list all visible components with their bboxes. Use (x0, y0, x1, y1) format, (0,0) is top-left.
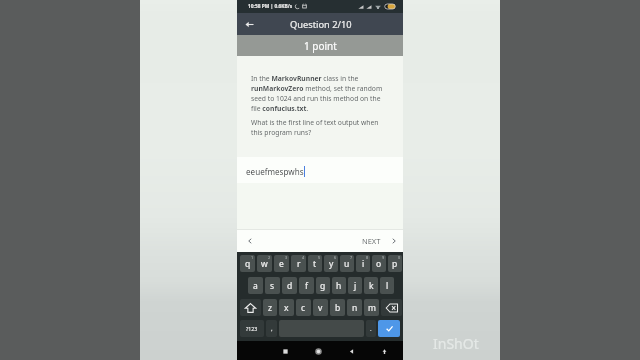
button[interactable]: , (266, 320, 277, 337)
staticText: 1 (251, 255, 254, 260)
staticText: ?123 (246, 325, 258, 332)
staticText: y (329, 258, 334, 270)
button[interactable]: f (299, 277, 314, 294)
staticText: 4 (302, 255, 305, 260)
button[interactable]: o (372, 255, 386, 272)
button[interactable]: m (364, 299, 379, 316)
button[interactable]: w (257, 255, 272, 272)
button[interactable]: Back (239, 13, 259, 35)
button[interactable]: Previous question (241, 230, 259, 252)
button[interactable]: Home (311, 344, 325, 358)
button[interactable]: eeuefmespwhs (237, 157, 403, 183)
button[interactable]: u (340, 255, 354, 272)
staticText: Question 2/10 (290, 18, 352, 31)
button[interactable]: Hide keyboard (377, 344, 391, 358)
button[interactable]: ?123 (240, 320, 264, 337)
button[interactable]: l (380, 277, 394, 294)
staticText: 5 (318, 255, 321, 260)
staticText: 0 (398, 255, 401, 260)
button[interactable]: y (324, 255, 338, 272)
button[interactable]: p (388, 255, 402, 272)
staticText: d (287, 280, 293, 292)
button[interactable]: z (263, 299, 277, 316)
button[interactable]: a (248, 277, 263, 294)
button[interactable]: g (316, 277, 330, 294)
button[interactable]: b (330, 299, 345, 316)
staticText: p (392, 258, 398, 270)
staticText: f (305, 280, 308, 292)
staticText: NEXT (362, 236, 381, 246)
staticText: What is the first line of text output wh… (251, 118, 387, 137)
staticText: v (318, 302, 323, 314)
button[interactable]: r (291, 255, 306, 272)
staticText: InShOt (433, 334, 479, 353)
staticText: 10:58 PM | 0.6KB/s (248, 3, 293, 10)
staticText: j (354, 280, 357, 292)
staticText: s (270, 280, 275, 292)
button[interactable]: q (240, 255, 255, 272)
staticText: k (369, 280, 374, 292)
staticText: m (368, 302, 376, 314)
staticText: 7 (350, 255, 353, 260)
button[interactable]: . (366, 320, 376, 337)
staticText: h (336, 280, 342, 292)
staticText: b (335, 302, 341, 314)
button[interactable]: Back (344, 344, 358, 358)
button[interactable]: s (265, 277, 280, 294)
staticText: q (245, 258, 251, 270)
button[interactable]: k (364, 277, 378, 294)
button[interactable]: j (348, 277, 362, 294)
staticText: 2 (268, 255, 271, 260)
staticText: x (284, 302, 289, 314)
button[interactable]: e (274, 255, 289, 272)
button[interactable]: Enter (378, 320, 400, 337)
button[interactable]: c (296, 299, 311, 316)
staticText: 3 (285, 255, 288, 260)
button[interactable]: Shift (240, 299, 261, 316)
staticText: u (344, 258, 350, 270)
staticText: 9 (382, 255, 385, 260)
staticText: 8 (366, 255, 369, 260)
button[interactable]: h (332, 277, 346, 294)
staticText: e (279, 258, 284, 270)
staticText: i (362, 258, 365, 270)
staticText: 6 (334, 255, 337, 260)
staticText: l (386, 280, 389, 292)
button[interactable]: x (279, 299, 294, 316)
staticText: eeuefmespwhs (246, 166, 304, 177)
staticText: g (320, 280, 326, 292)
staticText: In the MarkovRunner class in the runMark… (251, 74, 387, 113)
staticText: o (376, 258, 382, 270)
button[interactable]: Backspace (381, 299, 402, 316)
staticText: 1 point (304, 39, 337, 53)
staticText: w (261, 258, 268, 270)
staticText: t (313, 258, 317, 270)
button[interactable]: t (308, 255, 322, 272)
button[interactable]: Recents (278, 344, 292, 358)
button[interactable]: v (313, 299, 328, 316)
button[interactable]: i (356, 255, 370, 272)
button[interactable]: n (347, 299, 362, 316)
staticText: n (352, 302, 358, 314)
staticText: , (271, 325, 273, 333)
staticText: r (297, 258, 301, 270)
staticText: a (253, 280, 258, 292)
staticText: c (301, 302, 306, 314)
staticText: z (268, 302, 272, 314)
button[interactable]: NEXT (362, 230, 403, 252)
staticText: . (370, 325, 372, 333)
button[interactable]: d (282, 277, 297, 294)
